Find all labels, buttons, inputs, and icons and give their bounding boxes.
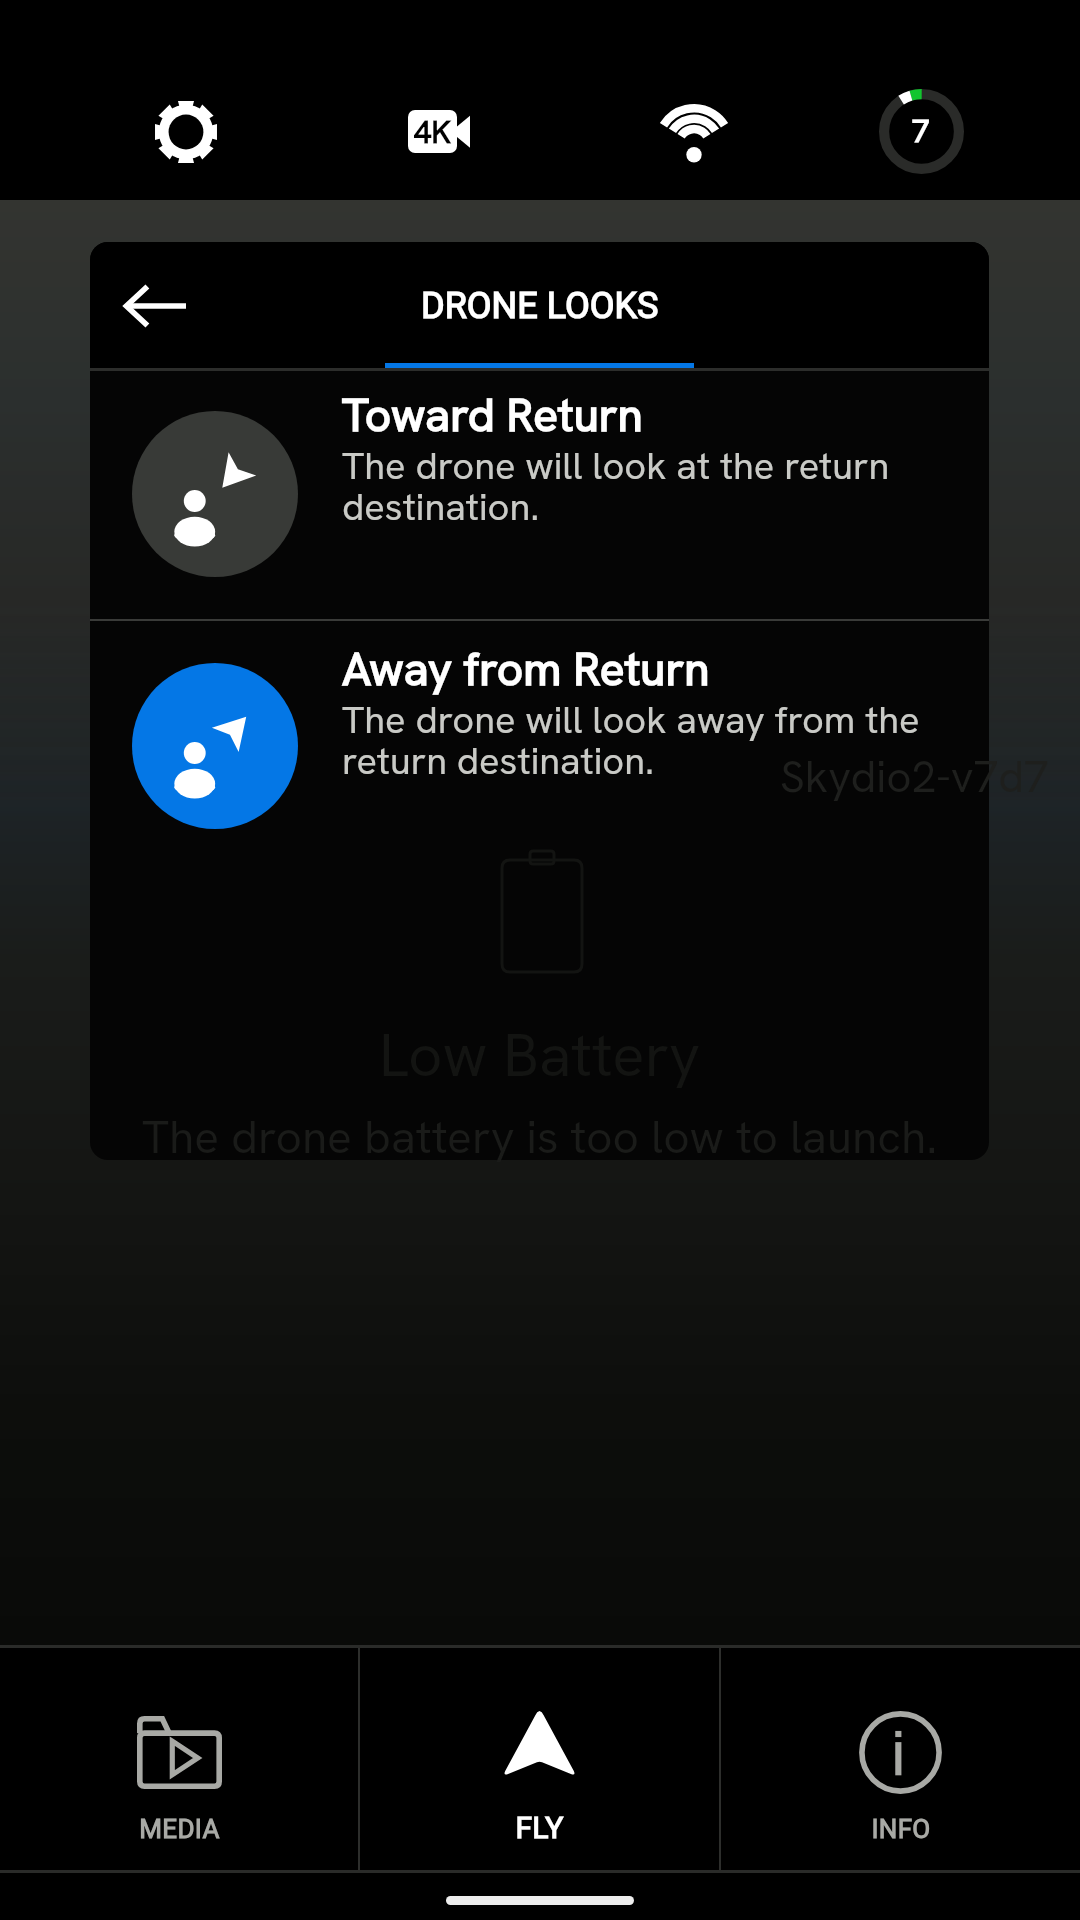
staticText: DRONE LOOKS <box>421 285 659 327</box>
staticText: The drone battery is too low to launch. <box>142 1107 938 1167</box>
staticText: MEDIA <box>139 1814 220 1844</box>
staticText: 4K <box>414 112 452 152</box>
button[interactable]: Away from Return <box>90 621 989 869</box>
staticText: INFO <box>871 1814 931 1844</box>
staticText: Low Battery <box>379 1016 701 1094</box>
staticText: The drone will look away from the return… <box>342 695 920 786</box>
staticText: Away from Return <box>342 639 710 699</box>
button[interactable]: MEDIA <box>0 1648 358 1870</box>
button[interactable]: Toward Return <box>90 371 989 619</box>
staticText: The drone will look at the return destin… <box>342 441 890 532</box>
staticText: FLY <box>515 1810 564 1845</box>
staticText: 7 <box>912 111 930 151</box>
staticText: Skydio2-v7d7 <box>780 748 1049 805</box>
button[interactable]: Settings <box>126 72 246 192</box>
button[interactable]: FLY <box>360 1648 719 1870</box>
button[interactable]: Video mode 4K <box>379 71 499 191</box>
button[interactable]: Battery 7 percent <box>861 71 981 191</box>
button[interactable]: Back <box>91 242 218 368</box>
button[interactable]: Wi-Fi signal <box>634 74 754 194</box>
staticText: Toward Return <box>342 385 643 445</box>
button[interactable]: INFO <box>721 1648 1080 1870</box>
